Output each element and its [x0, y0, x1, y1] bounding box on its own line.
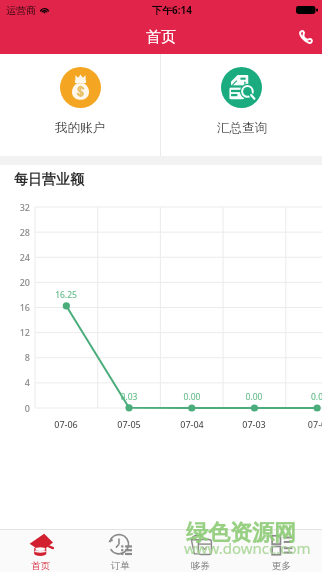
button[interactable]: 哆券 — [160, 530, 241, 572]
button[interactable]: 更多 — [241, 530, 322, 572]
staticText: 07-05 — [99, 418, 159, 430]
staticText: 绿色资源网 — [186, 519, 296, 547]
staticText: 07-03 — [224, 418, 284, 430]
staticText: 16 — [0, 301, 30, 313]
staticText: 20 — [0, 276, 30, 288]
staticText: 汇总查询 — [217, 120, 267, 136]
staticText: 4 — [0, 376, 30, 388]
staticText: 07-04 — [162, 418, 222, 430]
button[interactable]: 订单 — [80, 530, 160, 572]
staticText: 8 — [0, 351, 30, 363]
button[interactable]: Call — [288, 20, 322, 54]
staticText: 运营商 — [6, 4, 36, 17]
staticText: 28 — [0, 226, 30, 238]
staticText: 16.25 — [36, 289, 96, 301]
staticText: 32 — [0, 201, 30, 213]
staticText: 07-0 — [287, 418, 322, 430]
button[interactable]: 首页 — [0, 530, 80, 572]
staticText: 订单 — [111, 560, 130, 572]
button[interactable]: 我的账户 — [0, 54, 160, 156]
staticText: 每日营业额 — [14, 171, 84, 189]
staticText: 更多 — [272, 560, 291, 572]
staticText: 0.00 — [224, 391, 284, 403]
staticText: 首页 — [146, 28, 176, 47]
staticText: 24 — [0, 251, 30, 263]
staticText: www.downcc.com — [184, 538, 311, 558]
button[interactable]: 汇总查询 — [161, 54, 322, 156]
staticText: 我的账户 — [55, 120, 105, 136]
staticText: 12 — [0, 326, 30, 338]
staticText: 下午6:14 — [152, 3, 192, 17]
staticText: 07-06 — [36, 418, 96, 430]
staticText: 0.03 — [99, 391, 159, 403]
staticText: 0.0 — [287, 391, 322, 403]
staticText: 0.00 — [162, 391, 222, 403]
staticText: 首页 — [31, 560, 50, 572]
staticText: 哆券 — [191, 560, 210, 572]
staticText: 0 — [0, 402, 30, 414]
